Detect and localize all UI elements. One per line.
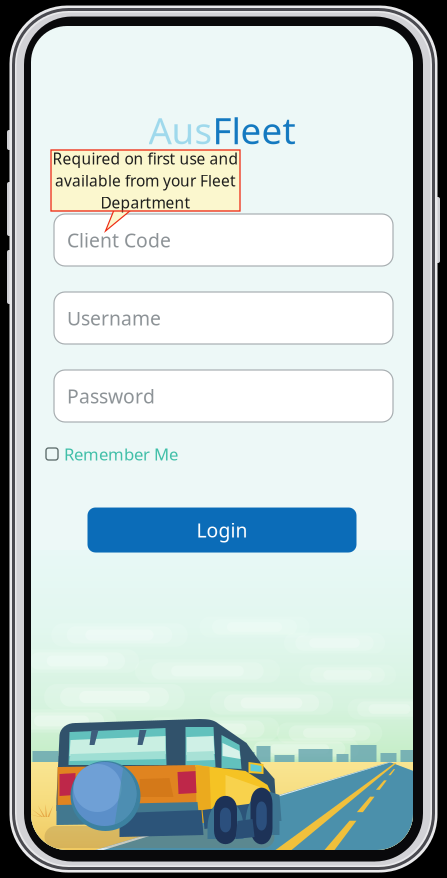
staticText: Aus [148,105,212,155]
staticText: Fleet [212,105,295,155]
staticText: Department [100,192,190,213]
staticText: Client Code [67,227,171,253]
button[interactable]: Password [54,370,393,422]
staticText: Password [67,383,155,409]
staticText: Required on first use and [52,148,238,169]
staticText: available from your Fleet [55,170,236,191]
button[interactable]: Username [54,292,393,344]
staticText: Remember Me [64,443,178,465]
button[interactable]: Remember Me [46,443,178,465]
staticText: Login [196,517,247,543]
button[interactable]: Client Code [54,214,393,266]
button[interactable]: Login [87,507,356,552]
staticText: Username [67,305,161,331]
